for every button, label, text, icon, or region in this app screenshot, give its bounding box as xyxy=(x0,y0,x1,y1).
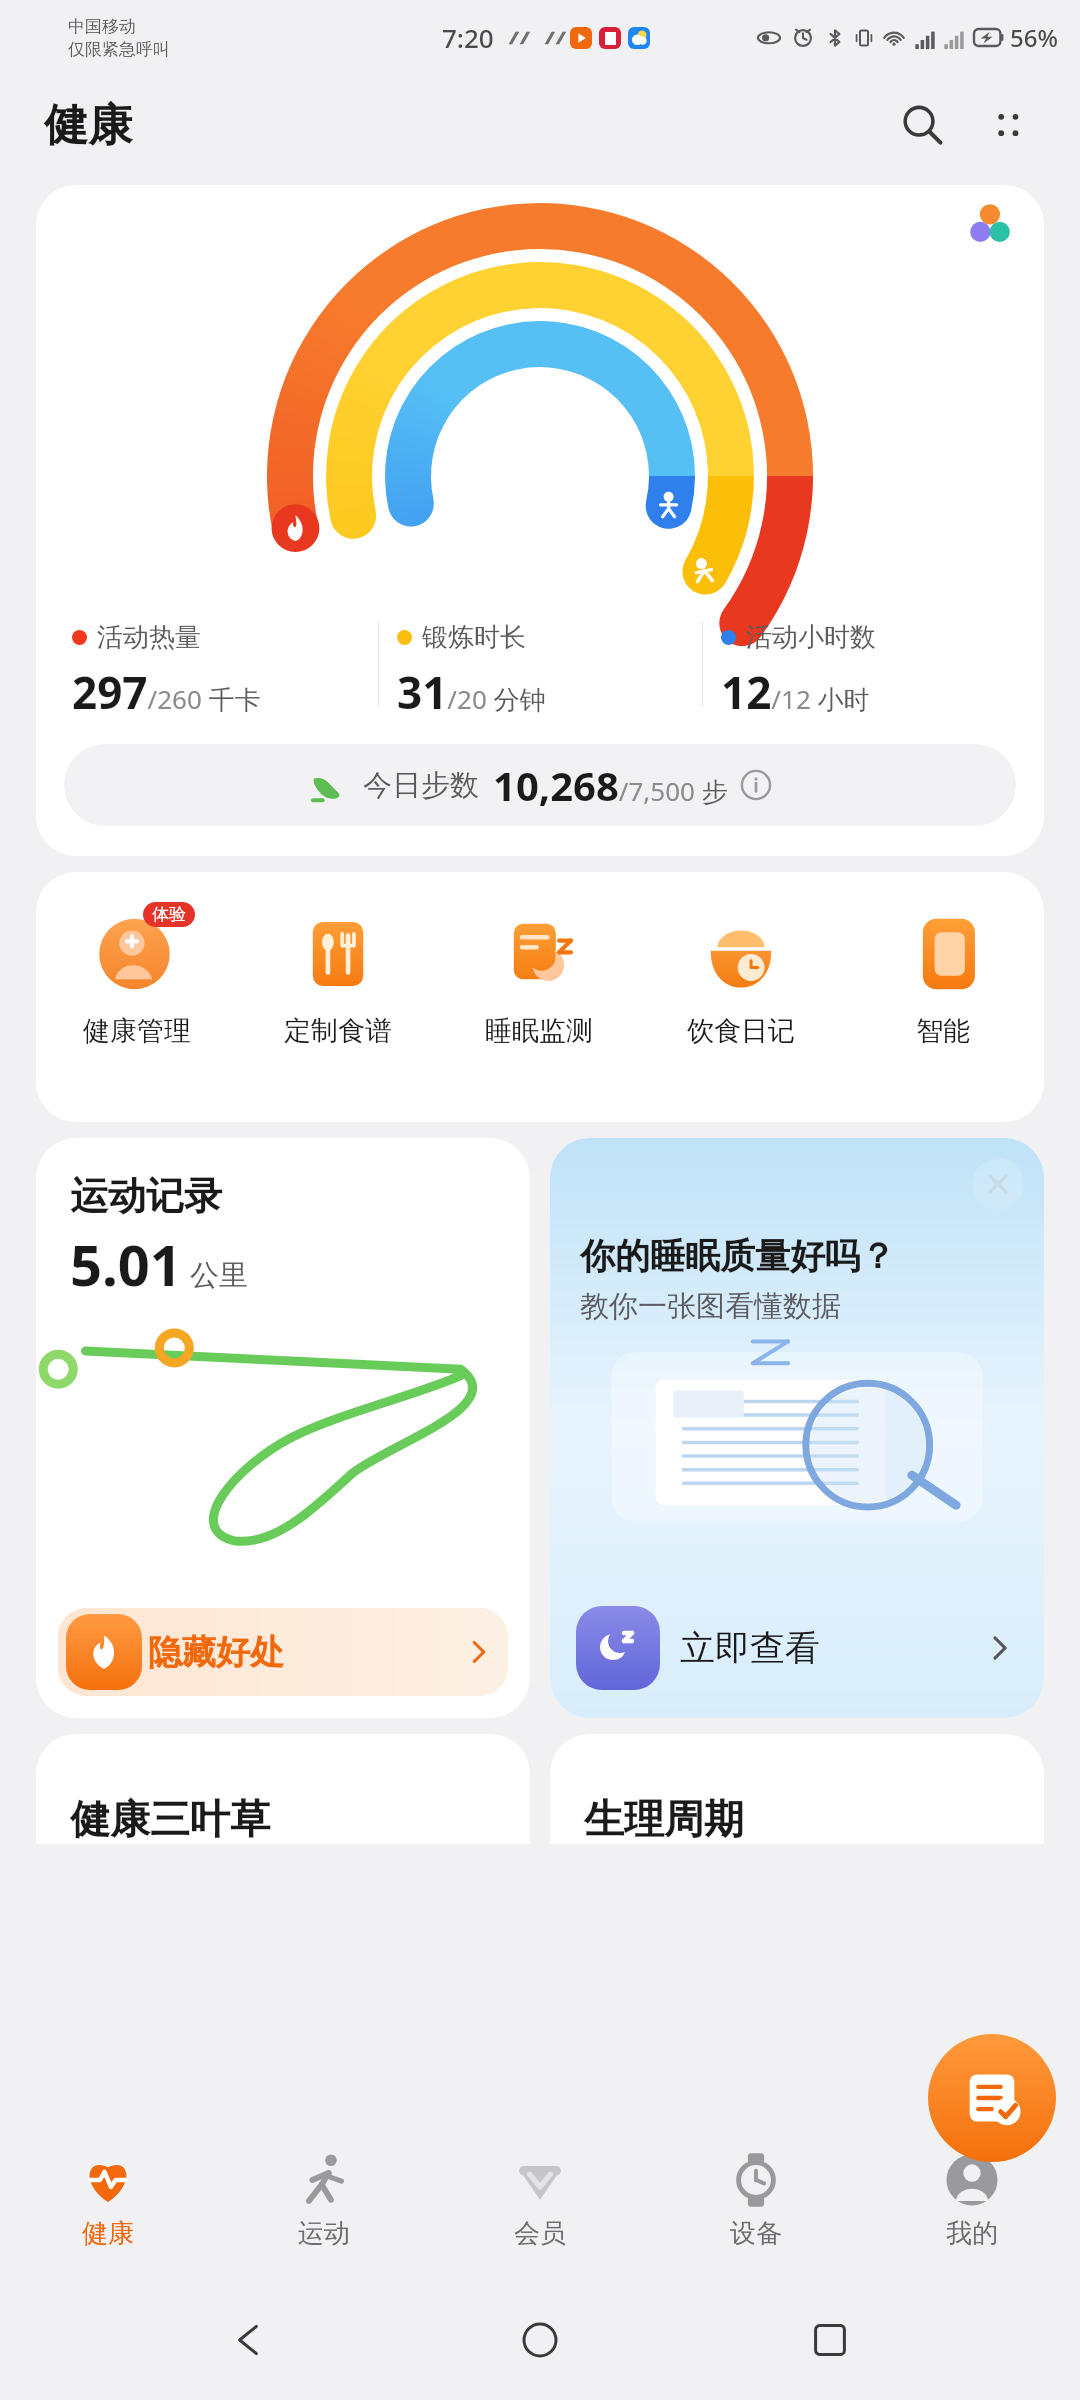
staticText: 智能 xyxy=(916,1014,970,1048)
button[interactable]: 健康 xyxy=(0,2120,216,2280)
button[interactable]: Add record xyxy=(928,2034,1056,2162)
button[interactable]: More options xyxy=(972,89,1044,161)
staticText: 10,268/7,500 步 xyxy=(493,758,728,812)
button[interactable]: 智能 xyxy=(842,906,1044,1048)
button[interactable]: Health profile xyxy=(936,185,1044,263)
staticText: 297/260 千卡 xyxy=(72,662,261,722)
button[interactable]: 生理周期 xyxy=(550,1734,1044,1844)
button[interactable]: Search xyxy=(886,89,958,161)
staticText: 12/12 小时 xyxy=(721,662,870,722)
staticText: 运动记录 xyxy=(70,1172,222,1220)
button[interactable]: 体验 xyxy=(36,906,237,1048)
button[interactable]: 立即查看 xyxy=(576,1598,1018,1698)
staticText: 7:20 xyxy=(442,20,494,55)
button[interactable]: 运动 xyxy=(216,2120,432,2280)
button[interactable]: 健康三叶草 xyxy=(36,1734,530,1844)
staticText: 运动 xyxy=(298,2217,350,2250)
staticText: 健康三叶草 xyxy=(70,1794,270,1844)
button[interactable]: 隐藏好处 xyxy=(58,1608,508,1696)
staticText: 56% xyxy=(1010,21,1058,54)
staticText: 设备 xyxy=(730,2217,782,2250)
staticText: 教你一张图看懂数据 xyxy=(580,1288,841,1325)
button[interactable]: Close xyxy=(550,1138,1044,1718)
staticText: 中国移动 xyxy=(68,16,136,37)
staticText: 活动小时数 xyxy=(746,621,876,654)
button[interactable]: 睡眠监测 xyxy=(438,906,640,1048)
staticText: 健康 xyxy=(44,98,132,153)
staticText: 活动热量 xyxy=(97,621,201,654)
button[interactable]: 设备 xyxy=(648,2120,864,2280)
button[interactable]: 我的 xyxy=(864,2120,1080,2280)
staticText: 会员 xyxy=(514,2217,566,2250)
staticText: 5.01 xyxy=(70,1226,182,1302)
staticText: 隐藏好处 xyxy=(148,1631,462,1674)
staticText: 健康 xyxy=(82,2217,134,2250)
staticText: 饮食日记 xyxy=(687,1014,795,1048)
staticText: 仅限紧急呼叫 xyxy=(68,39,170,60)
button[interactable]: Close xyxy=(972,1158,1024,1210)
button[interactable]: Back xyxy=(210,2300,290,2380)
button[interactable]: Recents xyxy=(790,2300,870,2380)
button[interactable]: Health profile xyxy=(36,185,1044,856)
staticText: 锻炼时长 xyxy=(422,621,526,654)
staticText: 立即查看 xyxy=(680,1626,982,1670)
button[interactable]: 今日步数 xyxy=(64,744,1016,826)
staticText: 公里 xyxy=(190,1257,248,1294)
staticText: 你的睡眠质量好吗？ xyxy=(580,1234,895,1278)
staticText: 定制食谱 xyxy=(284,1014,392,1048)
staticText: 健康管理 xyxy=(83,1014,191,1048)
staticText: 31/20 分钟 xyxy=(397,662,546,722)
staticText: 体验 xyxy=(152,904,186,925)
staticText: 睡眠监测 xyxy=(485,1014,593,1048)
staticText: 我的 xyxy=(946,2217,998,2250)
button[interactable]: 定制食谱 xyxy=(237,906,438,1048)
button[interactable]: 运动记录 xyxy=(36,1138,530,1718)
staticText: 生理周期 xyxy=(584,1794,744,1844)
button[interactable]: 会员 xyxy=(432,2120,648,2280)
button[interactable]: Home xyxy=(500,2300,580,2380)
staticText: 今日步数 xyxy=(363,767,479,804)
button[interactable]: 饮食日记 xyxy=(640,906,842,1048)
